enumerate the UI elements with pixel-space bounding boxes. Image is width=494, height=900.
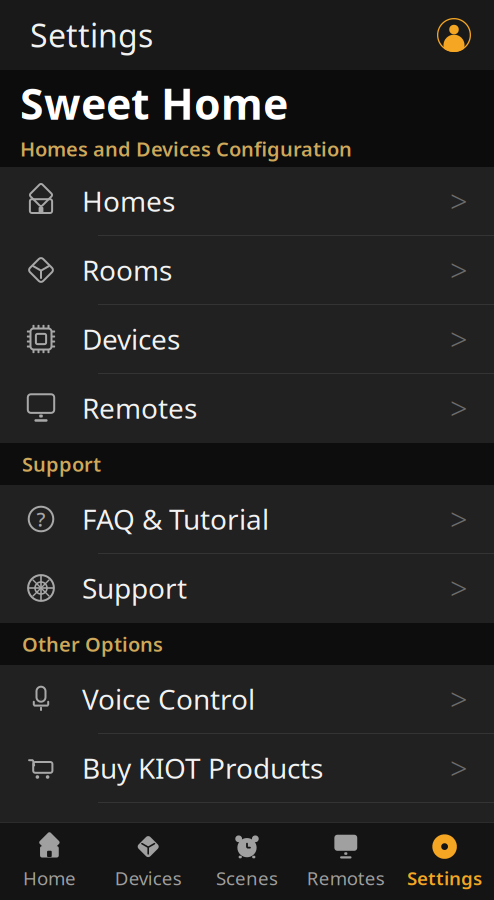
staticText: Support: [82, 569, 187, 607]
staticText: Rooms: [82, 251, 172, 289]
button[interactable]: Support: [0, 554, 494, 623]
staticText: >: [450, 499, 468, 539]
button[interactable]: Settings: [395, 823, 494, 900]
staticText: Devices: [82, 320, 180, 358]
staticText: >: [450, 181, 468, 221]
staticText: Sweet Home: [20, 75, 288, 132]
staticText: >: [450, 388, 468, 428]
button[interactable]: Rooms: [0, 236, 494, 305]
staticText: Home: [23, 866, 76, 890]
button[interactable]: Home: [0, 823, 99, 900]
button[interactable]: Buy KIOT Products: [0, 734, 494, 803]
staticText: Buy KIOT Products: [82, 749, 323, 787]
button[interactable]: Voice Control: [0, 665, 494, 734]
staticText: >: [450, 748, 468, 788]
staticText: >: [450, 319, 468, 359]
staticText: Remotes: [307, 866, 385, 890]
staticText: Voice Control: [82, 680, 255, 718]
staticText: >: [450, 568, 468, 608]
button[interactable]: Scenes: [198, 823, 296, 900]
staticText: Remotes: [82, 389, 197, 427]
button[interactable]: ?: [0, 485, 494, 554]
button[interactable]: Devices: [99, 823, 198, 900]
staticText: Settings: [30, 14, 153, 56]
staticText: Support: [22, 451, 101, 477]
button[interactable]: Remotes: [296, 823, 395, 900]
staticText: ?: [36, 506, 45, 532]
staticText: >: [450, 679, 468, 719]
button[interactable]: Homes: [0, 167, 494, 236]
staticText: Devices: [115, 866, 182, 890]
button[interactable]: Devices: [0, 305, 494, 374]
staticText: Other Options: [22, 631, 163, 657]
button[interactable]: Remotes: [0, 374, 494, 443]
staticText: Homes: [82, 182, 175, 220]
staticText: FAQ & Tutorial: [82, 500, 269, 538]
staticText: Settings: [407, 866, 482, 890]
button[interactable]: Account: [430, 11, 478, 59]
staticText: Scenes: [216, 866, 278, 890]
staticText: >: [450, 250, 468, 290]
staticText: Homes and Devices Configuration: [20, 136, 352, 162]
